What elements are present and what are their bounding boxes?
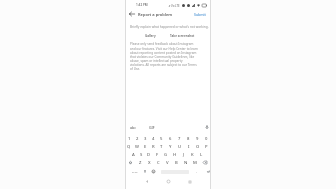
staticText: Briefly explain what happened or what's … [130,25,209,29]
button[interactable]: I [184,142,193,151]
button[interactable]: A [129,150,137,159]
staticText: 6 [169,136,172,142]
button[interactable]: Shift [125,158,136,167]
staticText: 9 [196,136,199,142]
staticText: M [193,160,197,166]
staticText: E [144,144,147,150]
staticText: Report a problem [138,12,173,17]
button[interactable]: M [190,158,199,167]
staticText: 5 [160,136,163,142]
staticText: H [173,152,177,158]
staticText: A [132,152,135,158]
staticText: L [200,152,203,158]
staticText: GIF [149,125,155,130]
staticText: O [196,144,200,150]
button[interactable]: Enter [203,167,213,176]
staticText: B [175,160,178,166]
button[interactable]: B [172,158,181,167]
button[interactable]: Take screenshot [166,33,198,38]
staticText: X [148,160,151,166]
staticText: 4 [152,136,155,142]
button[interactable]: 2 [133,134,141,143]
staticText: R [152,144,155,150]
staticText: Y [169,144,172,150]
button[interactable]: T [157,142,166,151]
button[interactable]: F [153,150,161,159]
staticText: Vo [171,4,175,8]
button[interactable]: X [145,158,154,167]
button[interactable]: Backspace [199,158,211,167]
button[interactable]: Back [126,8,137,19]
staticText: ?123 [132,170,138,173]
staticText: Take screenshot [170,34,195,38]
staticText: 2 [136,136,139,142]
staticText: J [183,152,185,158]
button[interactable]: 1 [125,134,133,143]
button[interactable]: J [179,150,188,159]
button[interactable]: N [181,158,190,167]
staticText: V [166,160,169,166]
staticText: Please only send feedback about Instagra… [130,42,198,70]
button[interactable]: E [141,142,149,151]
staticText: S [140,152,143,158]
button[interactable]: Emoji [149,167,158,176]
button[interactable]: P [202,142,211,151]
button[interactable]: GIF [149,123,155,131]
button[interactable]: D [145,150,153,159]
button[interactable]: V [163,158,172,167]
button[interactable]: Home [164,177,173,186]
button[interactable]: R [149,142,157,151]
staticText: D [147,152,151,158]
staticText: U [178,144,182,150]
staticText: LTE [175,4,180,8]
button[interactable]: 9 [193,134,202,143]
staticText: T [160,144,163,150]
staticText: Q [127,144,131,150]
staticText: . [196,169,198,174]
button[interactable]: 5 [157,134,166,143]
staticText: 8 [187,136,190,142]
staticText: I [188,144,190,150]
button[interactable]: W [133,142,141,151]
staticText: C [157,160,160,166]
button[interactable]: Gallery [134,33,166,38]
staticText: 7 [178,136,181,142]
staticText: 3 [144,136,147,142]
button[interactable]: Voice input [203,123,211,131]
button[interactable]: Submit [194,10,206,19]
button[interactable]: Voice typing [140,167,149,176]
button[interactable]: Recent apps [185,177,194,186]
staticText: W [135,144,139,150]
button[interactable]: C [154,158,163,167]
staticText: G [164,152,168,158]
button[interactable]: Y [166,142,175,151]
button[interactable]: 8 [184,134,193,143]
staticText: P [205,144,208,150]
button[interactable]: H [170,150,179,159]
staticText: Submit [194,12,206,17]
button[interactable]: 6 [166,134,175,143]
button[interactable]: Q [125,142,133,151]
button[interactable]: O [193,142,202,151]
staticText: Gallery [145,34,156,38]
button[interactable]: 3 [141,134,149,143]
button[interactable]: U [175,142,184,151]
staticText: 1 [128,136,131,142]
button[interactable]: L [197,150,206,159]
button[interactable]: 4 [149,134,157,143]
button[interactable]: Back [142,177,151,186]
button[interactable]: S [137,150,145,159]
button[interactable]: K [188,150,197,159]
staticText: F [156,152,159,158]
button[interactable]: ?123 [130,167,140,176]
button[interactable]: G [161,150,170,159]
staticText: N [184,160,188,166]
button[interactable]: abc [130,123,136,131]
button[interactable]: 7 [175,134,184,143]
staticText: 1:42 PM [136,3,148,7]
button[interactable]: Z [136,158,145,167]
staticText: 0 [205,136,208,142]
button[interactable]: 0 [202,134,211,143]
